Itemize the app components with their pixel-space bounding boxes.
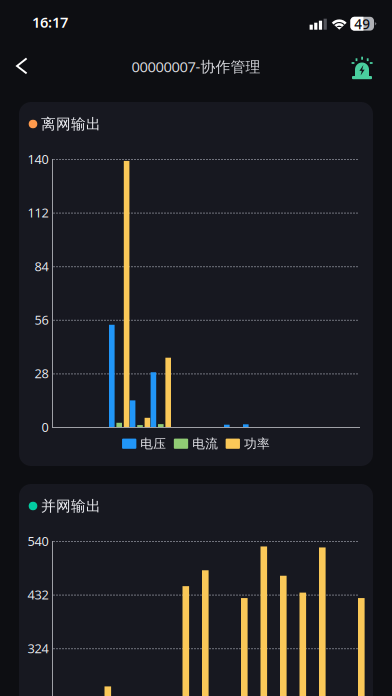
- staticText: 540: [27, 532, 48, 550]
- staticText: 离网输出: [41, 115, 101, 133]
- staticText: 84: [34, 257, 48, 275]
- staticText: 49: [354, 15, 370, 33]
- staticText: 功率: [244, 436, 270, 452]
- staticText: 324: [27, 639, 48, 657]
- staticText: 电压: [140, 436, 166, 452]
- staticText: 28: [34, 365, 48, 382]
- staticText: 112: [27, 204, 48, 221]
- staticText: 56: [34, 311, 48, 328]
- staticText: 电流: [192, 436, 218, 452]
- staticText: 0: [41, 418, 48, 436]
- staticText: 140: [27, 150, 48, 168]
- staticText: 16:17: [32, 12, 68, 32]
- staticText: 并网输出: [41, 497, 101, 515]
- button[interactable]: Alarms: [340, 46, 384, 90]
- staticText: 432: [27, 586, 48, 603]
- button[interactable]: Back: [7, 51, 51, 95]
- staticText: 00000007-协作管理: [131, 56, 260, 77]
